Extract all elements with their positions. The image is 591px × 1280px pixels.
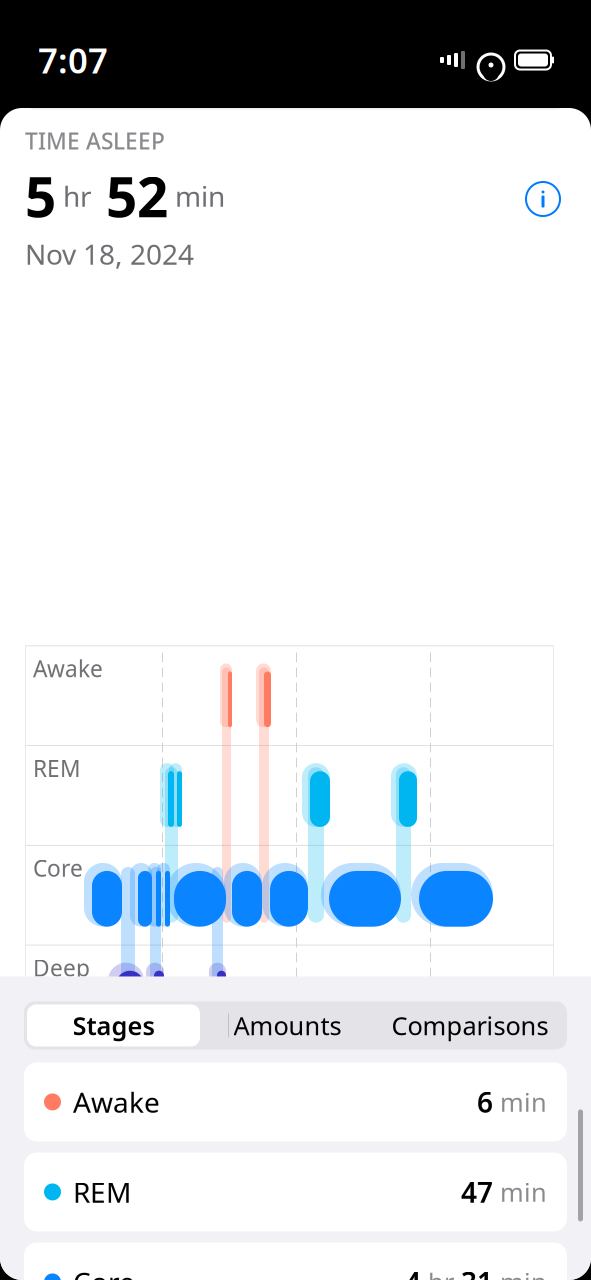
staticText: D — [82, 71, 99, 102]
staticText: Comparisons — [391, 1009, 548, 1042]
staticText: Awake — [33, 653, 103, 683]
staticText: 52 — [92, 160, 168, 232]
staticText: Deep — [33, 953, 90, 983]
staticText: REM — [73, 1173, 131, 1210]
button[interactable]: 6M — [426, 64, 562, 110]
staticText: Awake — [73, 1083, 160, 1120]
staticText: min — [493, 1265, 547, 1280]
staticText: min — [168, 177, 225, 215]
button[interactable]: About time asleep — [520, 176, 566, 222]
button[interactable]: Amounts — [200, 1001, 375, 1049]
button[interactable]: Awake — [24, 1062, 567, 1141]
staticText: 3 AM — [300, 1048, 347, 1075]
staticText: 47 — [461, 1173, 493, 1210]
button[interactable]: D — [27, 67, 155, 107]
staticText: Amounts — [233, 1009, 341, 1042]
staticText: 5 — [25, 160, 56, 232]
staticText: 6M — [477, 71, 511, 102]
staticText: Stages — [72, 1009, 154, 1042]
staticText: 11 PM — [28, 1048, 85, 1075]
staticText: REM — [33, 753, 81, 783]
staticText: 6 — [477, 1083, 493, 1120]
staticText: Nov 18, 2024 — [25, 235, 194, 272]
staticText: Core — [33, 853, 83, 883]
staticText: Core — [73, 1263, 135, 1280]
staticText: TIME ASLEEP — [25, 126, 165, 156]
button[interactable]: REM — [24, 1152, 567, 1231]
staticText: 4 — [405, 1263, 421, 1280]
button[interactable]: Stages — [27, 1004, 200, 1046]
staticText: 1 AM — [166, 1048, 213, 1075]
button[interactable]: Core — [24, 1242, 567, 1280]
staticText: 31 — [461, 1263, 493, 1280]
staticText: min — [493, 1085, 547, 1119]
button[interactable]: M — [290, 64, 426, 110]
button[interactable]: Comparisons — [375, 1001, 565, 1049]
staticText: hr — [421, 1265, 461, 1280]
staticText: 5 AM — [434, 1048, 481, 1075]
button[interactable]: W — [155, 64, 290, 110]
staticText: min — [493, 1175, 547, 1209]
staticText: 7:07 — [38, 37, 108, 83]
staticText: hr — [56, 177, 92, 215]
